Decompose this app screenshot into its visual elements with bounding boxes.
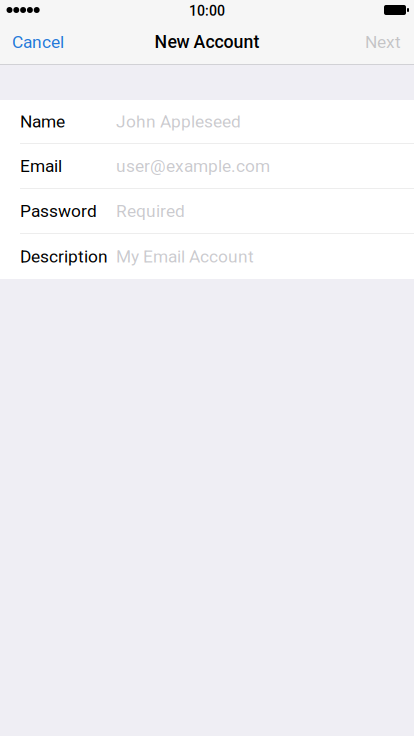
- staticText: Next: [365, 32, 401, 52]
- button[interactable]: Description: [0, 234, 414, 279]
- staticText: Cancel: [12, 32, 64, 52]
- staticText: Password: [20, 201, 97, 221]
- button[interactable]: Name: [0, 100, 414, 144]
- staticText: Description: [20, 246, 108, 267]
- staticText: 10:00: [189, 3, 225, 19]
- button[interactable]: Email: [0, 144, 414, 189]
- button[interactable]: Next: [352, 20, 414, 64]
- staticText: Name: [20, 111, 65, 132]
- button[interactable]: Cancel: [0, 20, 76, 64]
- button[interactable]: Password: [0, 189, 414, 234]
- staticText: John Appleseed: [116, 111, 241, 132]
- staticText: Required: [116, 201, 185, 221]
- staticText: Email: [20, 156, 62, 176]
- staticText: user@example.com: [116, 156, 270, 176]
- staticText: New Account: [154, 32, 259, 52]
- staticText: My Email Account: [116, 246, 254, 267]
